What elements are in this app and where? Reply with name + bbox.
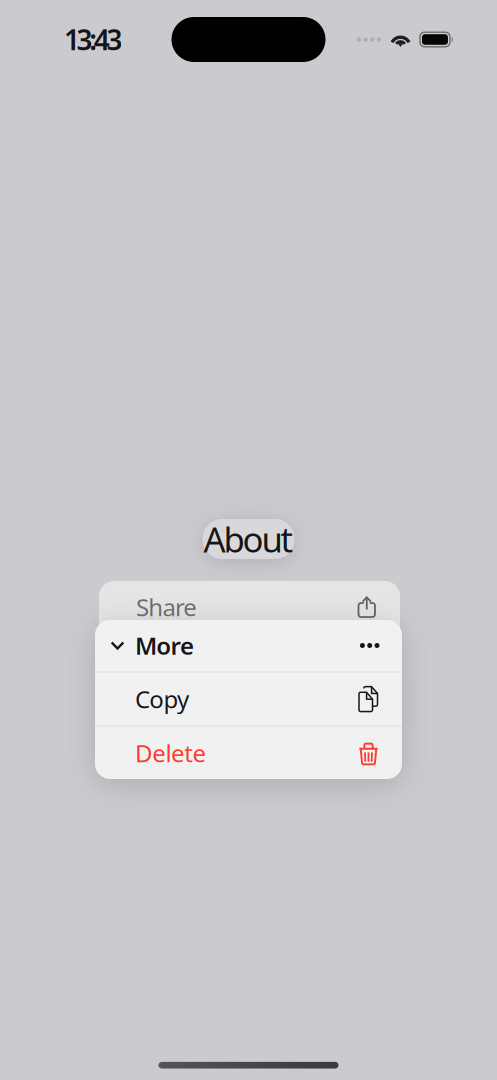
staticText: 13:43 bbox=[64, 21, 122, 58]
button[interactable]: About bbox=[202, 519, 294, 559]
staticText: More bbox=[135, 630, 194, 661]
button[interactable]: Delete bbox=[95, 726, 402, 779]
staticText: About bbox=[203, 516, 293, 562]
button[interactable]: Share bbox=[99, 581, 400, 633]
staticText: Copy bbox=[135, 683, 189, 715]
button[interactable]: Copy bbox=[95, 672, 402, 725]
button[interactable]: More bbox=[95, 619, 402, 671]
staticText: Delete bbox=[135, 737, 206, 769]
staticText: Share bbox=[136, 591, 197, 623]
